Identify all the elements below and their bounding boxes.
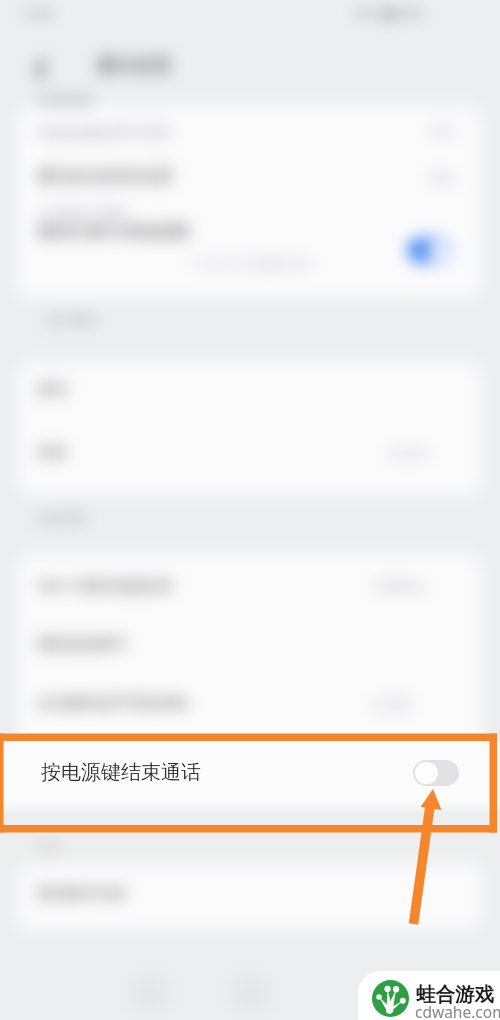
other: Pointer arrow [0, 0, 500, 1020]
staticText: 电话版本信息 [37, 884, 127, 903]
staticText: 国际漫游拨号 [37, 635, 127, 654]
staticText: 音效 [37, 443, 67, 462]
staticText: 通话设置 [96, 54, 172, 78]
staticText: SIM 卡通话快捷设置 [37, 575, 173, 595]
staticText: 飞行模式下通话 [37, 204, 128, 220]
staticText: 振动 [37, 380, 67, 399]
button[interactable]: 按电源键结束通话 [0, 741, 500, 804]
staticText: 4G+ ▮▮ 82% [356, 5, 422, 20]
staticText: 骚扰拦截与智能提醒 [37, 221, 190, 242]
staticText: 自动接听蓝牙耳机来电 [37, 694, 187, 713]
staticText: 按电源键结束通话 [41, 760, 201, 785]
staticText: 常用设置 [37, 93, 93, 111]
staticText: 蛙合游戏 [416, 982, 494, 1007]
staticText: 通话自动录音设置 [37, 166, 173, 187]
staticText: cdwahe.com [415, 1001, 500, 1020]
